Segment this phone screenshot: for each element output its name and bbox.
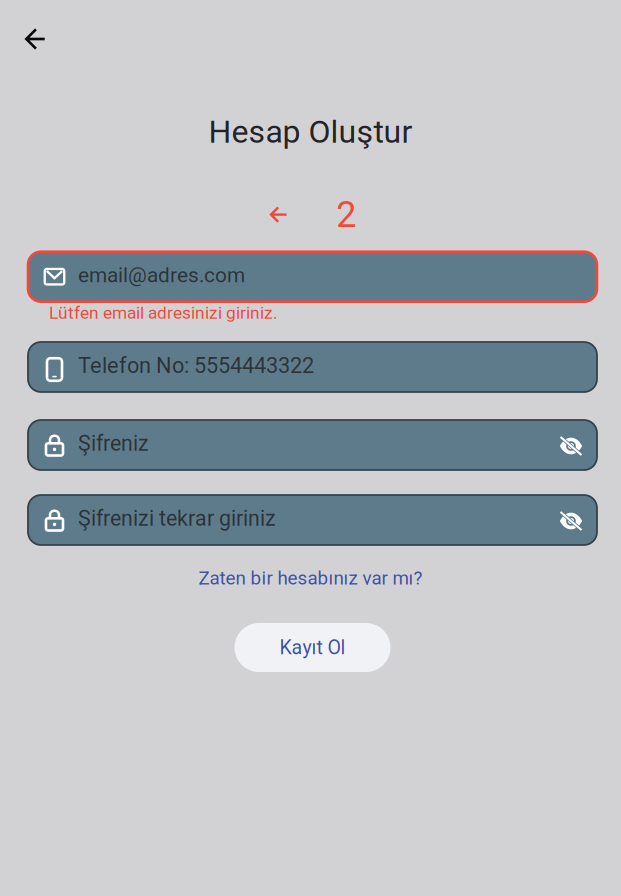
staticText: Lütfen email adresinizi giriniz. — [49, 303, 278, 323]
button[interactable]: Previous step — [265, 198, 299, 232]
staticText: 2 — [336, 193, 356, 236]
staticText: Şifrenizi tekrar giriniz — [78, 506, 276, 531]
button[interactable]: Zaten bir hesabınız var mı? — [188, 561, 432, 595]
staticText: Telefon No: 5554443322 — [78, 353, 314, 378]
button[interactable]: Back — [12, 17, 56, 61]
staticText: Hesap Oluştur — [208, 113, 412, 150]
button[interactable]: Show password — [555, 429, 587, 461]
button[interactable]: Kayıt Ol — [234, 623, 390, 672]
staticText: Şifreniz — [78, 431, 149, 456]
button[interactable]: Show confirm password — [555, 504, 587, 536]
staticText: Kayıt Ol — [279, 636, 345, 659]
staticText: Zaten bir hesabınız var mı? — [198, 567, 422, 589]
staticText: email@adres.com — [78, 263, 245, 287]
